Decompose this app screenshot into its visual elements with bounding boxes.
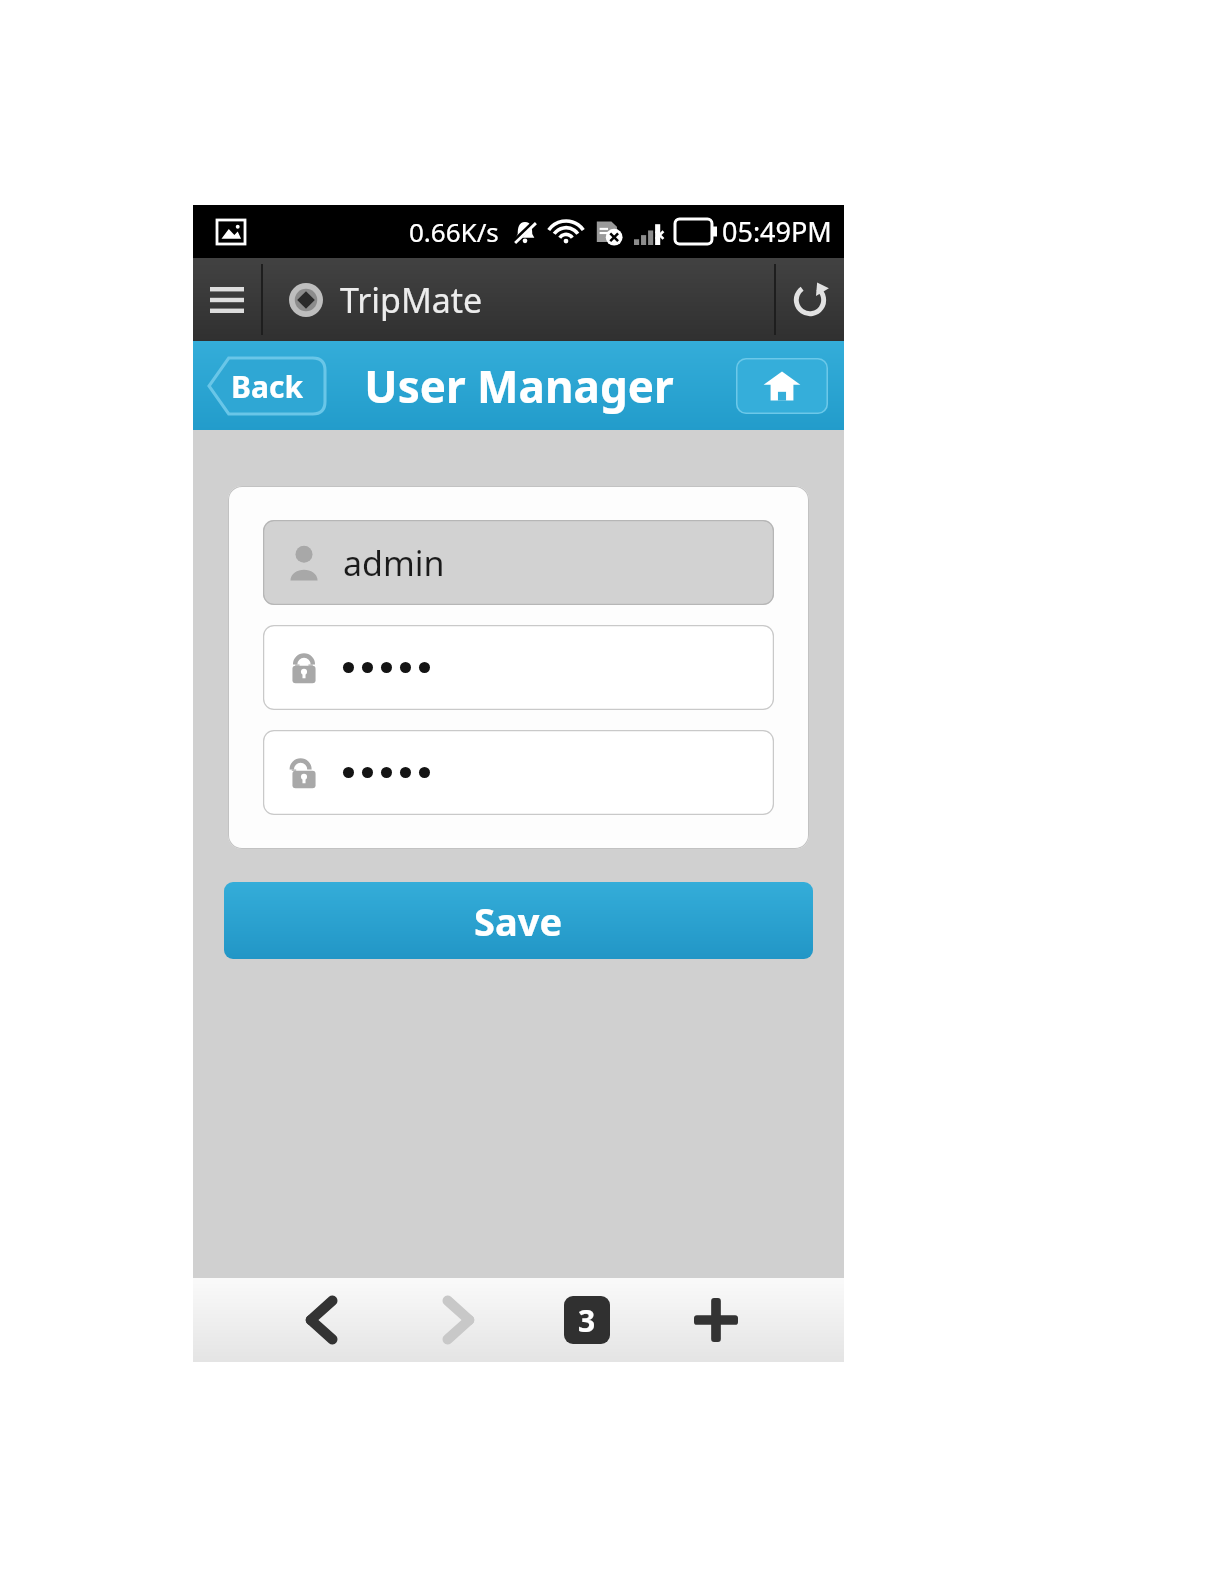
button[interactable]: Next xyxy=(427,1288,491,1352)
button[interactable]: Menu xyxy=(193,258,261,341)
button[interactable]: Home xyxy=(736,358,828,414)
button[interactable] xyxy=(263,625,774,710)
staticText: 05:49PM xyxy=(722,213,832,250)
staticText: User Manager xyxy=(364,356,674,416)
button[interactable]: admin xyxy=(263,520,774,605)
button[interactable]: Back xyxy=(209,358,325,414)
button[interactable]: Add xyxy=(684,1288,748,1352)
staticText: 3 xyxy=(578,1300,596,1341)
button[interactable]: Save xyxy=(224,882,813,959)
staticText: Save xyxy=(474,895,563,947)
button[interactable]: Refresh xyxy=(776,258,844,341)
staticText: admin xyxy=(343,540,445,586)
staticText: Back xyxy=(231,366,303,407)
button[interactable]: 3 xyxy=(564,1296,610,1344)
button[interactable] xyxy=(263,730,774,815)
button[interactable]: TripMate xyxy=(263,258,774,341)
staticText: 0.66K/s xyxy=(409,214,499,249)
button[interactable]: Previous xyxy=(289,1288,353,1352)
staticText: TripMate xyxy=(340,277,483,323)
